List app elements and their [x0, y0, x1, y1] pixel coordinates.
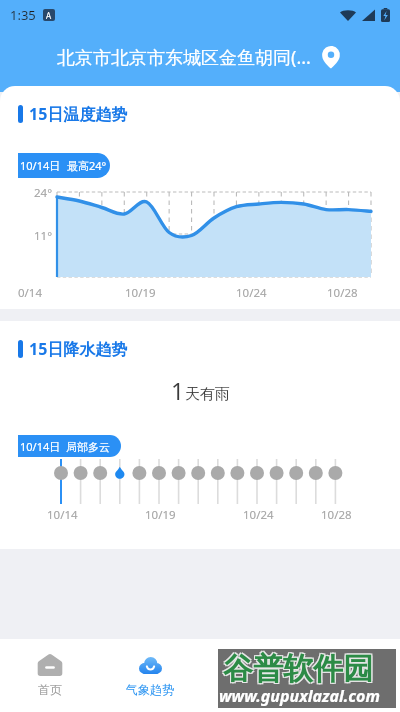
staticText: 1 [171, 375, 185, 406]
staticText: 0/14 [18, 285, 43, 301]
staticText: 谷普软件园 [222, 649, 372, 687]
staticText: 10/14 [47, 507, 78, 523]
staticText: 北京市北京市东城区金鱼胡同(... [57, 45, 311, 70]
staticText: 谷普软件园 [224, 651, 374, 689]
staticText: 10/24 [236, 285, 267, 301]
staticText: 11° [34, 228, 53, 244]
staticText: 10/14日 [20, 158, 61, 173]
staticText: 首页 [38, 682, 62, 697]
staticText: 局部多云 [66, 440, 110, 454]
staticText: A [46, 10, 52, 21]
staticText: 15日降水趋势 [29, 338, 128, 360]
staticText: www.gupuxlazal.com [219, 685, 380, 707]
staticText: 10/28 [327, 285, 358, 301]
button[interactable]: Location [319, 45, 343, 69]
staticText: 10/19 [145, 507, 176, 523]
button[interactable]: 10/14日 [18, 435, 121, 457]
staticText: 10/28 [321, 507, 352, 523]
staticText: 10/24 [243, 507, 274, 523]
staticText: 谷普软件园 [222, 651, 372, 689]
staticText: 天有雨 [185, 385, 230, 404]
staticText: 最高24° [67, 158, 107, 173]
staticText: 10/14日 [20, 439, 61, 454]
staticText: 10/19 [125, 285, 156, 301]
button[interactable]: 气象趋势 [100, 654, 200, 697]
staticText: 谷普软件园 [223, 650, 373, 688]
staticText: 气象趋势 [126, 682, 174, 697]
staticText: 谷普软件园 [224, 649, 374, 687]
button[interactable]: 首页 [0, 654, 100, 697]
button[interactable]: 10/14日 [18, 153, 110, 178]
staticText: 15日温度趋势 [29, 103, 128, 125]
staticText: 24° [34, 185, 53, 201]
staticText: 1:35 [10, 6, 36, 24]
